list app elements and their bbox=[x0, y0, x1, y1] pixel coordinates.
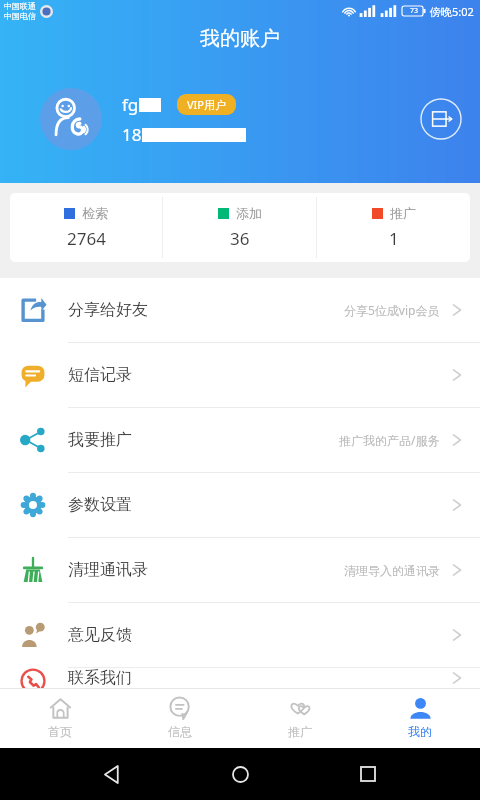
button[interactable]: 我要推广 bbox=[0, 408, 480, 472]
staticText: 推广 bbox=[390, 205, 416, 221]
button[interactable]: 检索 bbox=[10, 193, 162, 262]
staticText: 我的账户 bbox=[200, 26, 280, 51]
staticText: 检索 bbox=[82, 205, 108, 221]
button[interactable]: 联系我们 bbox=[0, 668, 480, 688]
staticText: 清理通讯录 bbox=[68, 560, 148, 580]
button[interactable]: VIP用户 bbox=[187, 97, 226, 112]
button[interactable]: Recents bbox=[353, 759, 383, 789]
staticText: 意见反馈 bbox=[68, 625, 132, 645]
staticText: 清理导入的通讯录 bbox=[344, 563, 440, 578]
button[interactable]: 清理通讯录 bbox=[0, 538, 480, 602]
staticText: 推广 bbox=[288, 724, 312, 739]
staticText: 1 bbox=[389, 227, 399, 250]
staticText: 信息 bbox=[168, 724, 192, 739]
staticText: 联系我们 bbox=[68, 668, 132, 688]
button[interactable]: Home bbox=[225, 759, 255, 789]
staticText: 中国电信 bbox=[4, 11, 36, 21]
button[interactable]: 我的 bbox=[360, 688, 480, 748]
staticText: 添加 bbox=[236, 205, 262, 221]
staticText: 参数设置 bbox=[68, 495, 132, 515]
button[interactable]: 分享给好友 bbox=[0, 278, 480, 342]
staticText: 分享5位成vip会员 bbox=[344, 302, 440, 318]
staticText: 18 bbox=[122, 123, 142, 146]
button[interactable]: Back bbox=[98, 759, 128, 789]
staticText: 傍晚5:02 bbox=[430, 4, 474, 19]
staticText: VIP用户 bbox=[187, 97, 226, 112]
button[interactable]: 短信记录 bbox=[0, 343, 480, 407]
staticText: 36 bbox=[230, 227, 250, 250]
staticText: 首页 bbox=[48, 724, 72, 739]
button[interactable]: 推广 bbox=[317, 193, 470, 262]
button[interactable]: 参数设置 bbox=[0, 473, 480, 537]
button[interactable]: 添加 bbox=[163, 193, 316, 262]
button[interactable]: Logout bbox=[420, 98, 462, 140]
staticText: 短信记录 bbox=[68, 365, 132, 385]
staticText: fg bbox=[122, 93, 139, 116]
button[interactable]: 信息 bbox=[120, 688, 240, 748]
staticText: 我要推广 bbox=[68, 430, 132, 450]
staticText: 2764 bbox=[67, 227, 106, 250]
button[interactable]: 推广 bbox=[240, 688, 360, 748]
staticText: 中国联通 bbox=[4, 1, 36, 11]
staticText: 我的 bbox=[408, 724, 432, 739]
button[interactable]: 首页 bbox=[0, 688, 120, 748]
staticText: 推广我的产品/服务 bbox=[339, 432, 440, 448]
staticText: 73 bbox=[410, 6, 419, 16]
button[interactable]: 意见反馈 bbox=[0, 603, 480, 667]
staticText: 分享给好友 bbox=[68, 300, 148, 320]
